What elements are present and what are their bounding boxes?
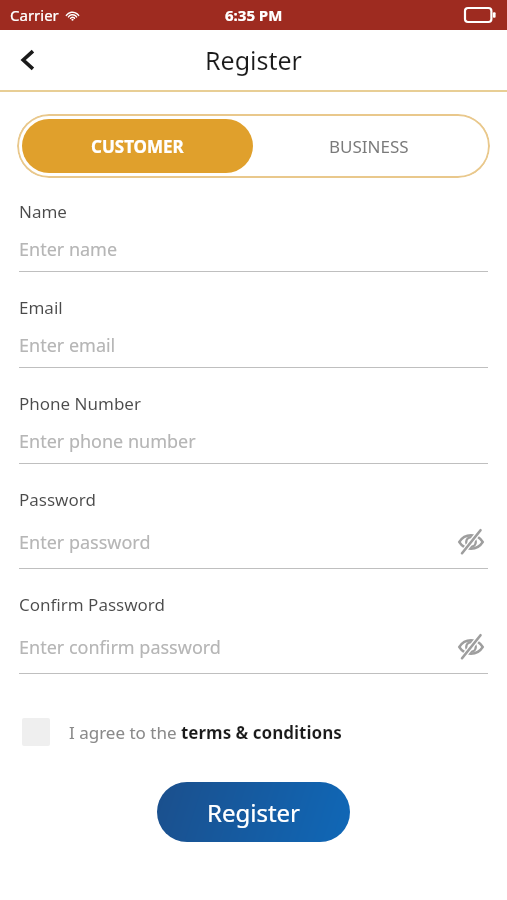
staticText: BUSINESS [329, 135, 409, 158]
staticText: Phone Number [19, 392, 141, 415]
button[interactable]: Back [6, 38, 50, 82]
staticText: 6:35 PM [225, 5, 283, 25]
staticText: Enter password [19, 530, 151, 555]
button[interactable]: Phone Number [19, 392, 488, 488]
staticText: I agree to the terms & conditions [69, 721, 342, 744]
button[interactable]: Register [157, 782, 350, 842]
staticText: Confirm Password [19, 593, 165, 616]
staticText: Enter name [19, 237, 118, 262]
button[interactable]: Confirm Password [19, 593, 488, 698]
button[interactable]: CUSTOMER [22, 119, 253, 173]
staticText: CUSTOMER [91, 135, 184, 158]
staticText: Register [207, 796, 301, 829]
button[interactable]: Password [19, 488, 488, 593]
button[interactable]: Toggle password visibility [454, 525, 488, 559]
button[interactable]: I agree to the terms & conditions [22, 718, 342, 746]
button[interactable]: Toggle password visibility [454, 630, 488, 664]
button[interactable]: Name [19, 200, 488, 296]
staticText: Email [19, 296, 63, 319]
staticText: Register [205, 43, 302, 77]
staticText: Carrier [10, 5, 59, 25]
staticText: Password [19, 488, 96, 511]
button[interactable]: BUSINESS [253, 119, 485, 173]
staticText: Name [19, 200, 67, 223]
button[interactable]: Email [19, 296, 488, 392]
staticText: Enter phone number [19, 429, 196, 454]
staticText: Enter email [19, 333, 116, 358]
staticText: Enter confirm password [19, 635, 221, 660]
